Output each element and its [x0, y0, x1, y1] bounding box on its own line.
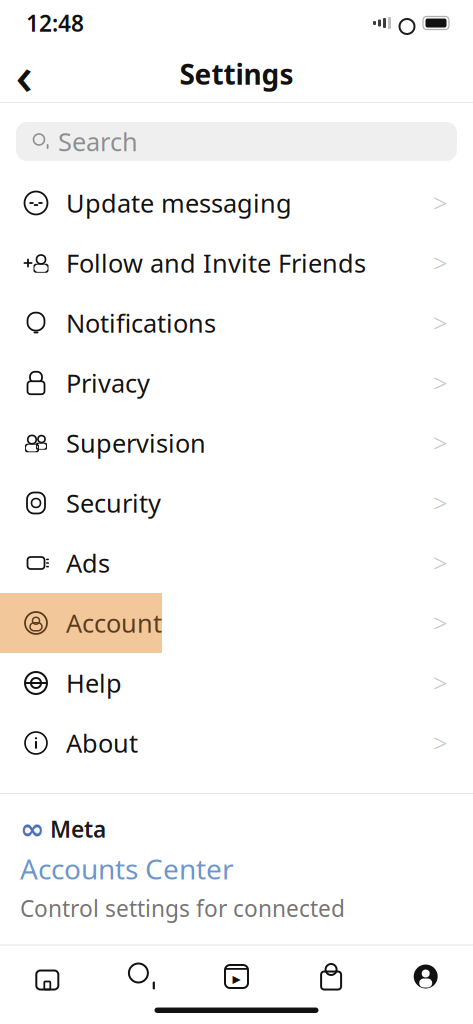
staticText: > — [433, 606, 447, 640]
button[interactable]: Security — [0, 473, 473, 533]
button[interactable]: Reels — [189, 962, 284, 990]
button[interactable]: Shop — [284, 962, 378, 990]
staticText: Help — [66, 666, 122, 700]
staticText: ∞ — [20, 812, 44, 846]
staticText: Security — [66, 486, 161, 520]
staticText: Meta — [50, 814, 106, 844]
button[interactable]: Home — [0, 962, 95, 990]
staticText: > — [433, 666, 447, 700]
button[interactable]: Profile — [378, 962, 473, 990]
staticText: Supervision — [66, 426, 206, 460]
button[interactable]: Back — [0, 48, 48, 100]
staticText: ▶ — [232, 973, 240, 985]
staticText: 12:48 — [26, 8, 84, 38]
staticText: > — [433, 366, 447, 400]
button[interactable]: Search — [16, 122, 457, 161]
staticText: Settings — [179, 55, 293, 93]
staticText: Ads — [66, 546, 110, 580]
button[interactable]: Help — [0, 653, 473, 713]
staticText: > — [433, 726, 447, 760]
staticText: Update messaging — [66, 186, 292, 220]
staticText: > — [433, 246, 447, 280]
staticText: > — [433, 486, 447, 520]
staticText: ‹ — [15, 39, 32, 109]
button[interactable]: ∞ — [0, 794, 473, 923]
staticText: > — [433, 546, 447, 580]
staticText: Privacy — [66, 366, 150, 400]
button[interactable]: Update messaging — [0, 173, 473, 233]
staticText: Follow and Invite Friends — [66, 246, 366, 280]
staticText: Search — [58, 125, 138, 158]
staticText: > — [433, 186, 447, 220]
staticText: Accounts Center — [20, 850, 234, 887]
button[interactable]: Account — [0, 593, 473, 653]
button[interactable]: Notifications — [0, 293, 473, 353]
staticText: Control settings for connected — [20, 893, 345, 923]
button[interactable]: About — [0, 713, 473, 773]
staticText: About — [66, 726, 138, 760]
button[interactable]: Search — [95, 962, 189, 990]
button[interactable]: Supervision — [0, 413, 473, 473]
staticText: Account — [66, 606, 162, 640]
staticText: > — [433, 306, 447, 340]
button[interactable]: Ads — [0, 533, 473, 593]
button[interactable]: Follow and Invite Friends — [0, 233, 473, 293]
button[interactable]: Privacy — [0, 353, 473, 413]
staticText: > — [433, 426, 447, 460]
staticText: Notifications — [66, 306, 216, 340]
